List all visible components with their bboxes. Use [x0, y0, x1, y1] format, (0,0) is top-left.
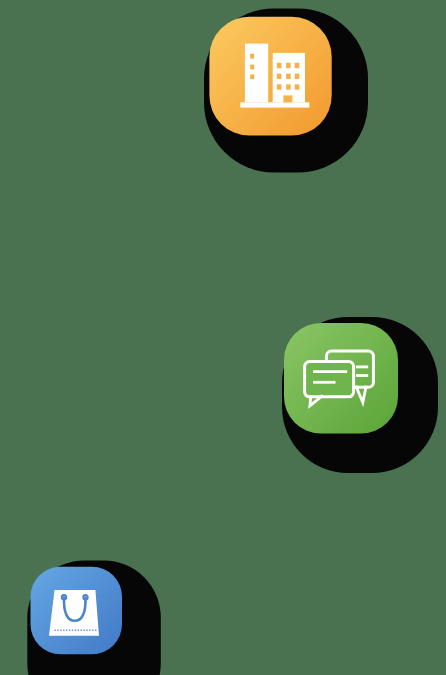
button[interactable] [30, 567, 122, 655]
button[interactable] [209, 17, 331, 136]
button[interactable] [284, 323, 398, 433]
